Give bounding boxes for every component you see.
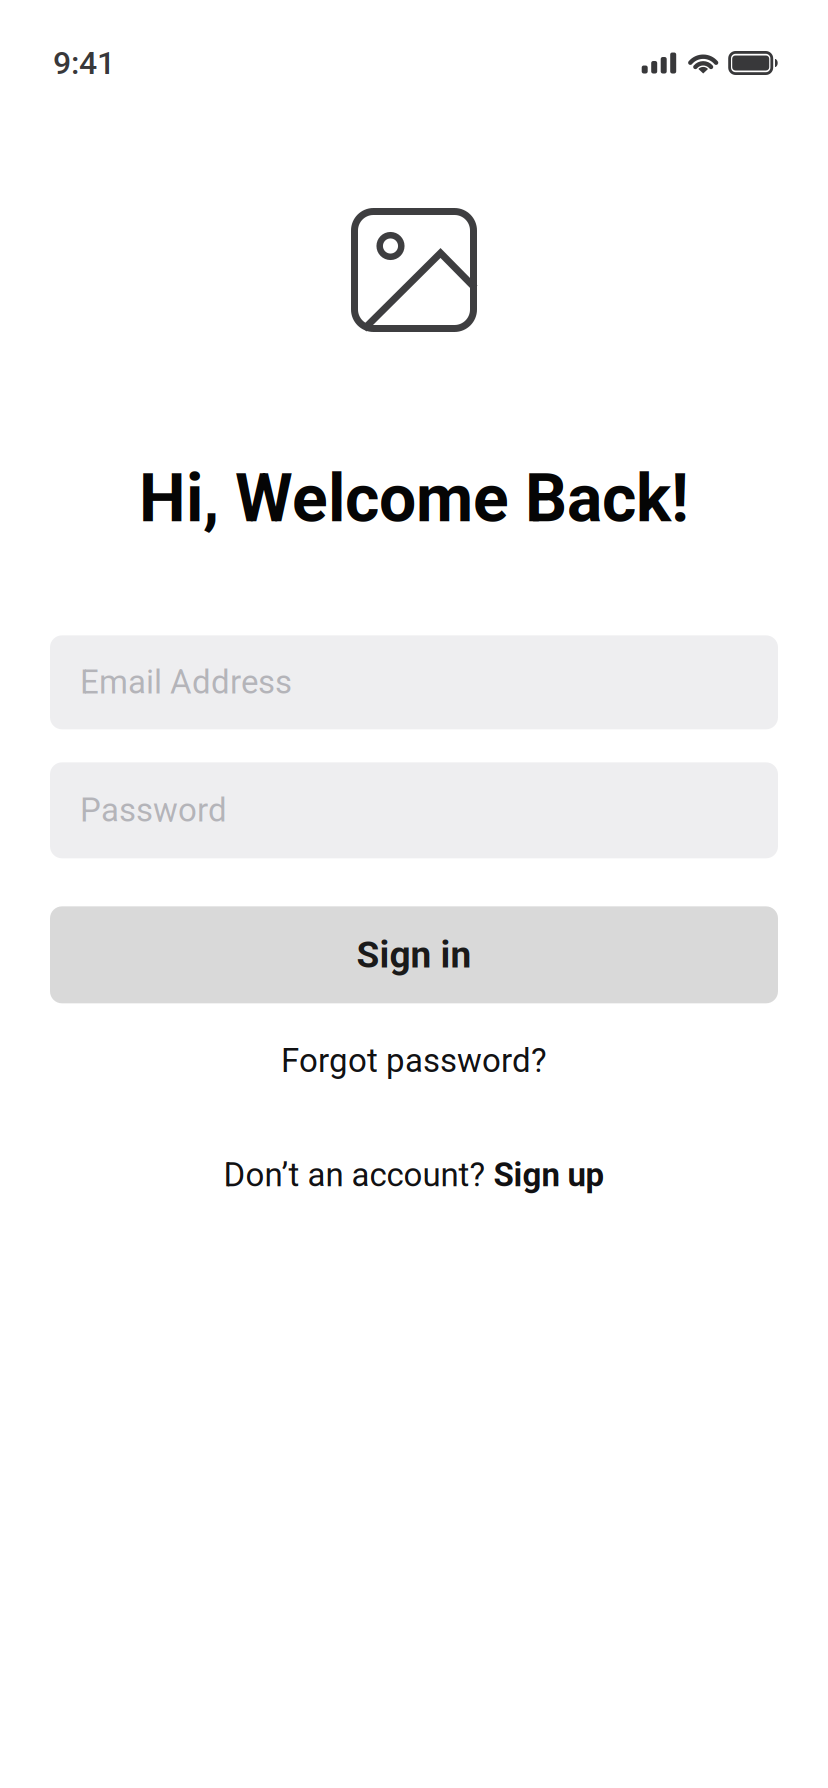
staticText: Email Address xyxy=(80,663,292,702)
button[interactable]: Don’t an account? Sign up xyxy=(223,1156,604,1194)
staticText: Forgot password? xyxy=(281,1041,547,1080)
button[interactable]: Sign in xyxy=(50,906,778,1003)
staticText: Don’t an account? Sign up xyxy=(223,1156,604,1194)
staticText: 9:41 xyxy=(53,44,115,82)
button[interactable]: Email Address xyxy=(50,635,778,729)
staticText: Hi, Welcome Back! xyxy=(139,460,689,537)
staticText: Password xyxy=(80,791,227,830)
button[interactable]: Password xyxy=(50,762,778,858)
staticText: Sign in xyxy=(356,933,471,977)
button[interactable]: Forgot password? xyxy=(281,1041,547,1080)
